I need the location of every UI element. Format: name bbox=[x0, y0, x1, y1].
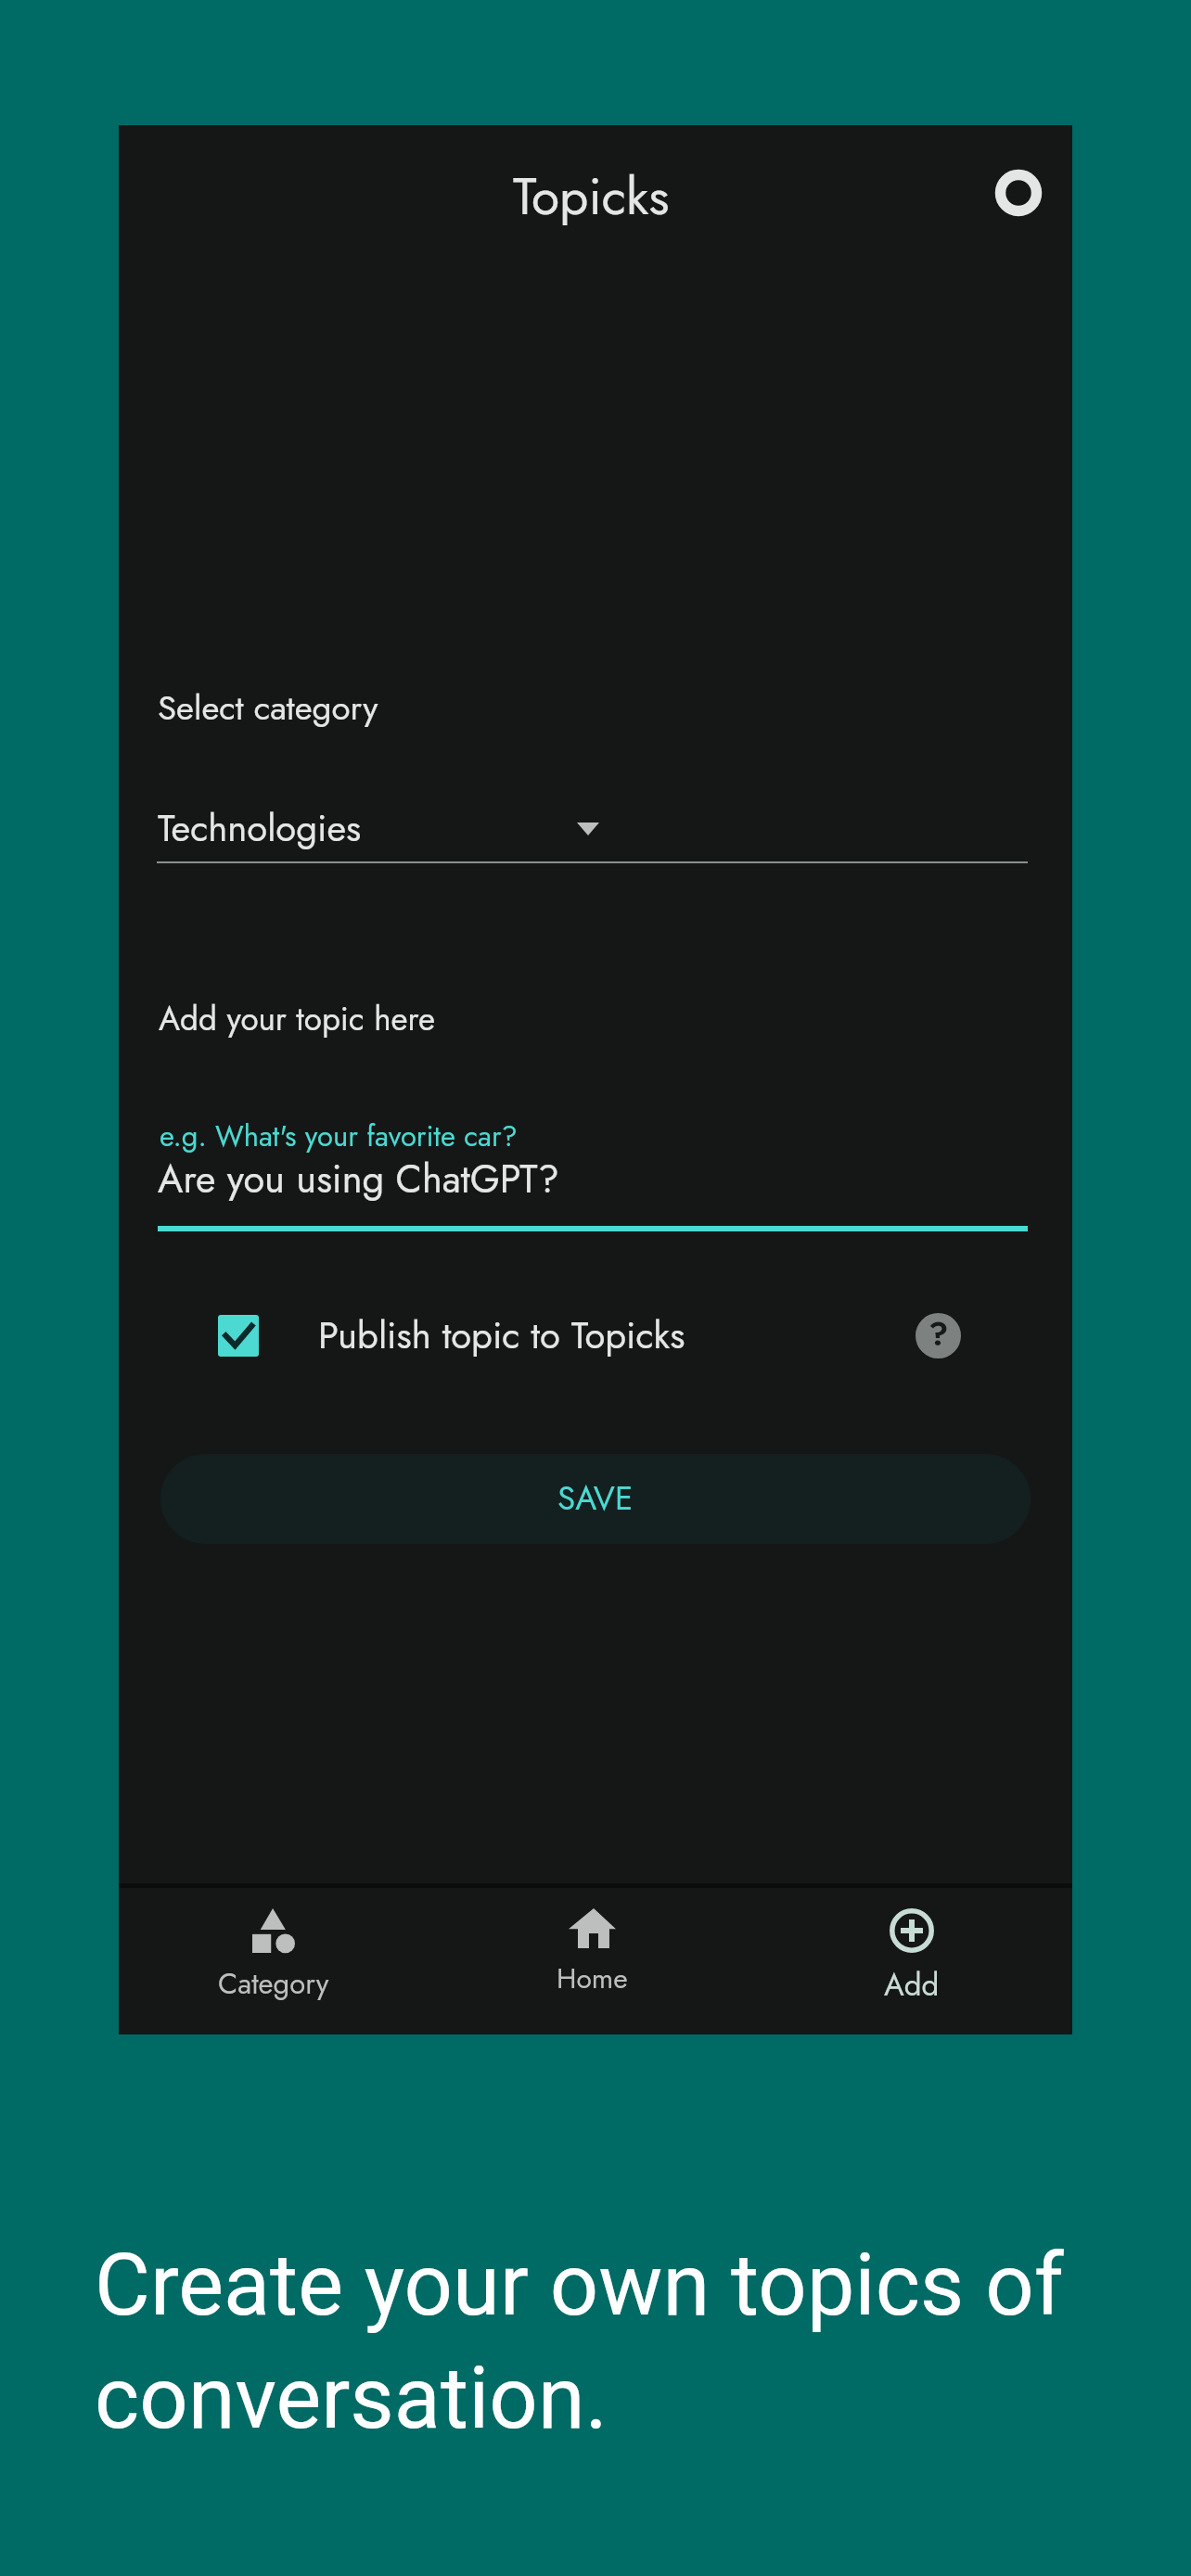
staticText: SAVE bbox=[557, 1475, 634, 1523]
staticText: e.g. What's your favorite car? bbox=[160, 1116, 518, 1157]
button[interactable]: Help bbox=[889, 1286, 987, 1384]
staticText: ? bbox=[928, 1313, 949, 1357]
button[interactable]: Publish topic to Topicks bbox=[218, 1307, 685, 1364]
staticText: conversation. bbox=[95, 2349, 608, 2449]
button[interactable]: Account bbox=[983, 158, 1054, 228]
button[interactable]: Category bbox=[153, 1888, 394, 2034]
staticText: Category bbox=[218, 1963, 329, 2005]
staticText: Technologies bbox=[158, 801, 362, 855]
staticText: Topicks bbox=[513, 159, 670, 233]
staticText: Are you using ChatGPT? bbox=[158, 1152, 559, 1207]
staticText: Add bbox=[884, 1963, 940, 2008]
button[interactable]: Topicks bbox=[119, 125, 1072, 264]
staticText: Select category bbox=[158, 683, 378, 733]
button[interactable]: Add bbox=[791, 1888, 1032, 2034]
staticText: Publish topic to Topicks bbox=[318, 1308, 685, 1362]
staticText: Add your topic here bbox=[159, 996, 436, 1043]
button[interactable]: Technologies bbox=[158, 801, 1033, 870]
staticText: Home bbox=[557, 1958, 628, 1998]
staticText: Create your own topics of bbox=[95, 2236, 1064, 2336]
button[interactable]: SAVE bbox=[160, 1454, 1031, 1544]
button[interactable]: Home bbox=[471, 1888, 712, 2034]
